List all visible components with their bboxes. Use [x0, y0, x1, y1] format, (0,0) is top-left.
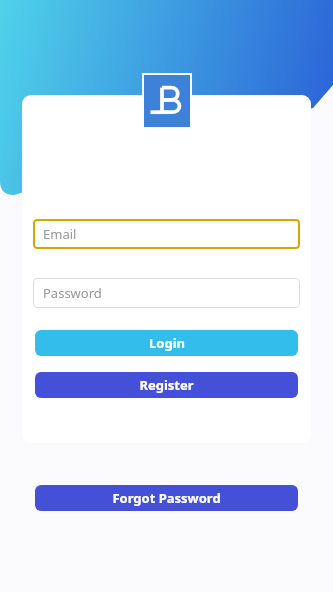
button[interactable]: Register [35, 372, 298, 398]
other: App logo [142, 73, 192, 129]
staticText: Forgot Password [112, 489, 221, 507]
staticText: Register [139, 376, 194, 394]
staticText: Login [149, 334, 185, 352]
button[interactable]: Password [33, 278, 300, 308]
button[interactable]: Forgot Password [35, 485, 298, 511]
staticText: Email [43, 225, 77, 243]
button[interactable]: Email [33, 219, 300, 249]
button[interactable]: Login [35, 330, 298, 356]
staticText: Password [43, 284, 102, 302]
